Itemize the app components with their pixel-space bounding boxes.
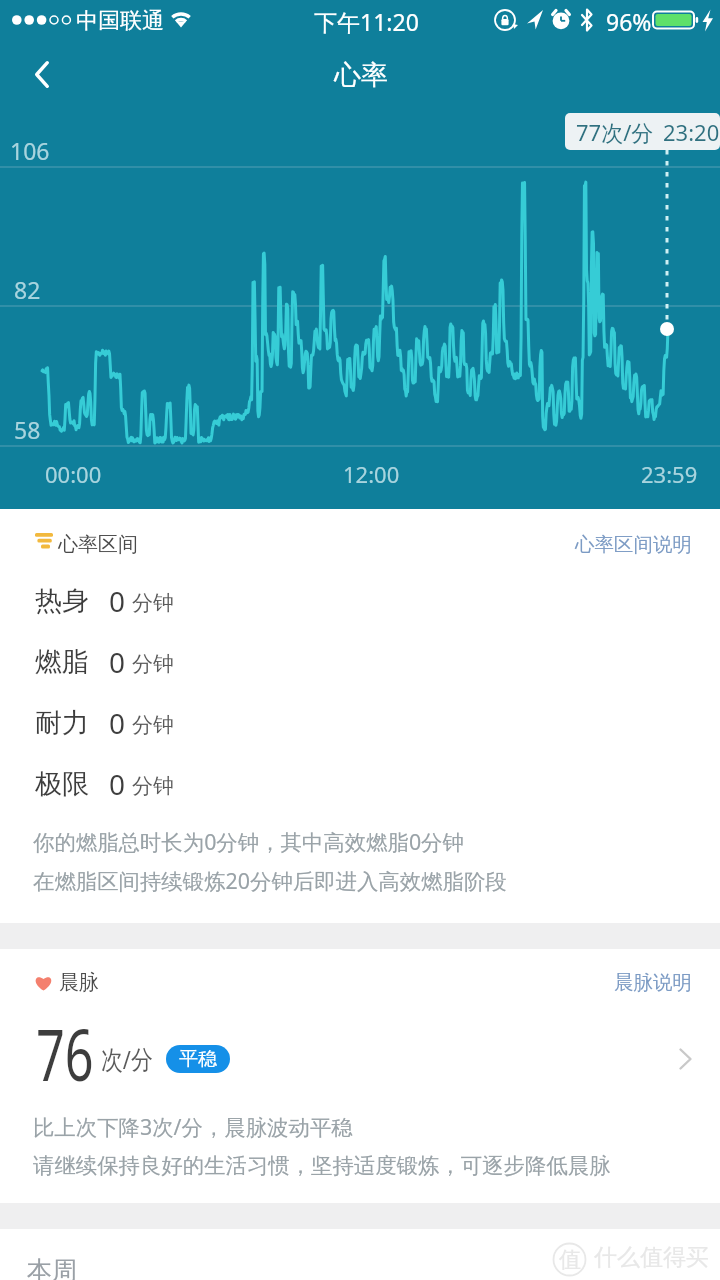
button[interactable]: 晨脉说明	[586, 960, 720, 1005]
staticText: 00:00	[45, 459, 102, 489]
button[interactable]: 热身	[0, 570, 720, 631]
staticText: 下午11:20	[314, 6, 419, 37]
staticText: 76	[36, 1004, 94, 1082]
button[interactable]: 76	[0, 1006, 720, 1084]
staticText: 0	[109, 582, 126, 620]
staticText: 晨脉	[59, 970, 99, 995]
staticText: 0	[109, 765, 126, 803]
button[interactable]: Back	[8, 40, 76, 108]
staticText: 心率	[334, 58, 388, 92]
staticText: 次/分	[101, 1041, 153, 1077]
staticText: 你的燃脂总时长为0分钟，其中高效燃脂0分钟	[33, 827, 464, 856]
staticText: 在燃脂区间持续锻炼20分钟后即进入高效燃脂阶段	[33, 866, 507, 895]
button[interactable]: 极限	[0, 753, 720, 814]
button[interactable]: 心率区间说明	[547, 522, 720, 567]
staticText: 热身	[35, 584, 89, 618]
staticText: 106	[10, 135, 50, 166]
staticText: 分钟	[132, 712, 174, 738]
staticText: 平稳	[179, 1047, 217, 1071]
staticText: 分钟	[132, 651, 174, 677]
staticText: 分钟	[132, 590, 174, 616]
staticText: 值	[559, 1246, 581, 1274]
staticText: 请继续保持良好的生活习惯，坚持适度锻炼，可逐步降低晨脉	[33, 1152, 611, 1179]
staticText: 12:00	[343, 459, 400, 489]
staticText: 23:59	[641, 459, 698, 489]
staticText: 77次/分	[576, 117, 654, 147]
staticText: 0	[109, 643, 126, 681]
staticText: 心率区间	[58, 532, 138, 557]
staticText: 23:20	[663, 117, 720, 147]
staticText: 什么值得买	[594, 1243, 709, 1272]
staticText: 耐力	[35, 706, 89, 740]
staticText: 本周	[27, 1255, 77, 1280]
staticText: 分钟	[132, 773, 174, 799]
staticText: 96%	[606, 6, 652, 37]
button[interactable]: 燃脂	[0, 631, 720, 692]
staticText: 82	[14, 274, 41, 305]
button[interactable]: 耐力	[0, 692, 720, 753]
staticText: 58	[14, 414, 41, 445]
staticText: 中国联通	[76, 7, 164, 35]
staticText: 比上次下降3次/分，晨脉波动平稳	[33, 1112, 353, 1141]
staticText: 晨脉说明	[614, 970, 692, 995]
staticText: 0	[109, 704, 126, 742]
staticText: 燃脂	[35, 645, 89, 679]
staticText: 极限	[35, 767, 89, 801]
staticText: 心率区间说明	[575, 532, 692, 557]
